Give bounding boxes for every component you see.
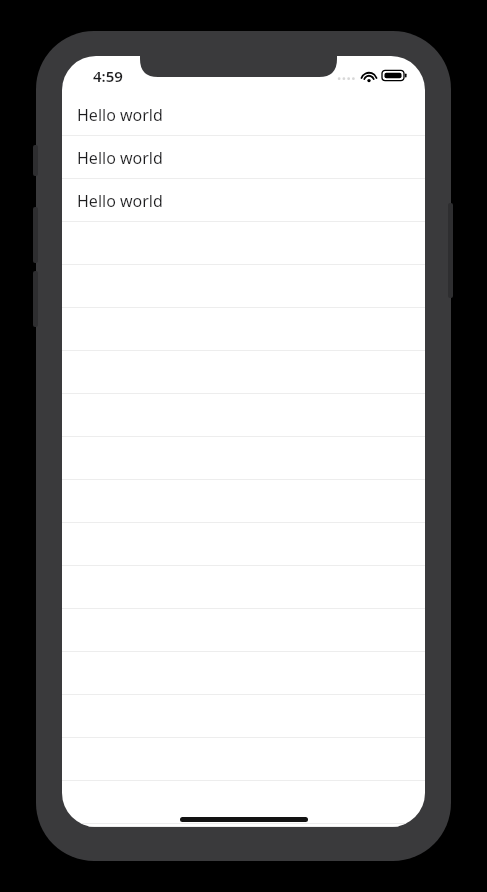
button[interactable]: Hello world [62, 179, 425, 222]
button[interactable] [62, 824, 425, 827]
staticText: Hello world [77, 190, 163, 212]
button[interactable]: Hello world [62, 93, 425, 136]
button[interactable] [62, 781, 425, 824]
staticText: 4:59 [93, 66, 123, 86]
staticText: Hello world [77, 104, 163, 126]
staticText: Hello world [77, 147, 163, 169]
button[interactable]: Hello world [62, 136, 425, 179]
button[interactable]: Silent switch [33, 145, 38, 176]
